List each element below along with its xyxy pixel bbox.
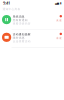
- staticText: 通知中心列表: [2, 8, 20, 11]
- staticText: 未读: [56, 19, 62, 22]
- button[interactable]: 系统消息: [0, 12, 64, 30]
- staticText: ▃▅ ▮: [55, 1, 61, 4]
- staticText: 活动通知提醒: [13, 33, 31, 36]
- staticText: 点击查看活动: [13, 40, 31, 43]
- staticText: 查看详情内容: [13, 22, 31, 25]
- staticText: 未读: [56, 36, 62, 40]
- staticText: 9:41: [3, 0, 10, 6]
- button[interactable]: 活动通知提醒: [0, 30, 64, 47]
- staticText: 您有新通知: [13, 18, 28, 22]
- staticText: 系统消息: [13, 15, 25, 18]
- staticText: 限时优惠: [13, 36, 25, 39]
